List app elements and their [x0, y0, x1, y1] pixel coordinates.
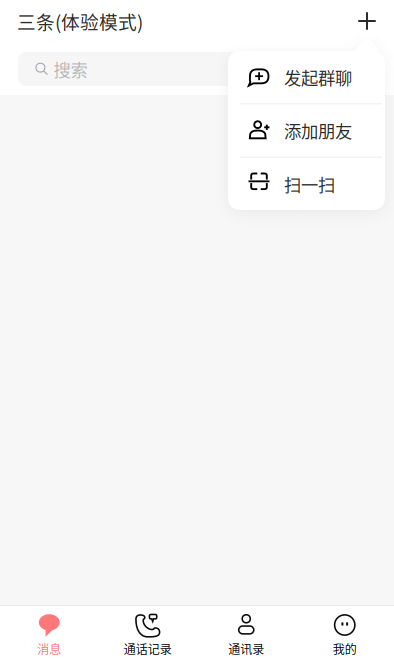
button[interactable]: 通讯录 — [197, 605, 295, 660]
staticText: 搜索 — [53, 56, 87, 82]
staticText: 消息 — [37, 640, 61, 657]
button[interactable]: 扫一扫 — [228, 158, 385, 210]
staticText: 扫一扫 — [284, 171, 335, 196]
staticText: 我的 — [333, 640, 357, 657]
button[interactable]: 我的 — [295, 605, 394, 660]
staticText: 通讯录 — [228, 640, 264, 657]
staticText: 三条(体验模式) — [17, 7, 143, 34]
button[interactable]: 消息 — [0, 605, 98, 660]
staticText: 通话记录 — [124, 640, 172, 657]
button[interactable]: 新建 — [345, 0, 389, 42]
button[interactable]: 添加朋友 — [228, 104, 385, 157]
staticText: 添加朋友 — [284, 118, 352, 143]
button[interactable]: 发起群聊 — [228, 51, 385, 103]
staticText: 发起群聊 — [284, 65, 352, 90]
button[interactable]: 通话记录 — [98, 605, 197, 660]
